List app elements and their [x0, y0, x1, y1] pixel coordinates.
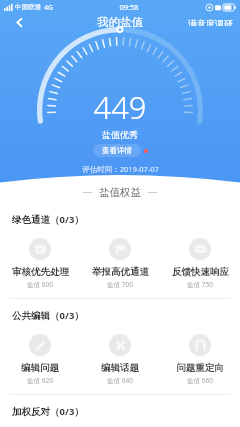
- staticText: 编辑问题: [21, 362, 59, 374]
- staticText: 举报高优通道: [92, 266, 149, 278]
- staticText: 盐值 620: [27, 376, 53, 385]
- staticText: 盐值 700: [107, 280, 133, 289]
- button[interactable]: 编辑问题: [0, 334, 80, 385]
- button[interactable]: 查看详情: [93, 144, 141, 157]
- staticText: 审核优先处理: [12, 266, 69, 278]
- staticText: 盐值 750: [187, 280, 213, 289]
- staticText: 盐值权益: [99, 186, 141, 199]
- staticText: 盐值 640: [107, 376, 133, 385]
- staticText: 4G: [44, 3, 53, 12]
- staticText: 加权反对（0/3）: [12, 405, 84, 418]
- staticText: 449: [93, 86, 147, 128]
- staticText: 满意度调研: [188, 18, 233, 26]
- button[interactable]: Back: [6, 14, 32, 30]
- button[interactable]: 问题重定向: [160, 334, 240, 385]
- button[interactable]: 举报高优通道: [80, 238, 160, 289]
- staticText: 盐值 660: [187, 376, 213, 385]
- staticText: 盐值优秀: [102, 129, 138, 140]
- button[interactable]: 满意度调研: [181, 14, 240, 30]
- button[interactable]: 审核优先处理: [0, 238, 80, 289]
- staticText: 编辑话题: [101, 362, 139, 374]
- staticText: 反馈快速响应: [172, 266, 229, 278]
- staticText: 09:58: [119, 2, 139, 12]
- staticText: 评估时间：2019-07-07: [82, 164, 159, 174]
- staticText: 查看详情: [102, 146, 132, 155]
- staticText: 公共编辑（0/3）: [12, 309, 84, 322]
- staticText: 盐值 600: [27, 280, 53, 289]
- button[interactable]: 反馈快速响应: [160, 238, 240, 289]
- staticText: 我的盐值: [97, 15, 143, 29]
- staticText: 中国联通: [15, 3, 41, 11]
- button[interactable]: 编辑话题: [80, 334, 160, 385]
- staticText: 绿色通道（0/3）: [12, 213, 84, 226]
- staticText: 问题重定向: [176, 362, 224, 374]
